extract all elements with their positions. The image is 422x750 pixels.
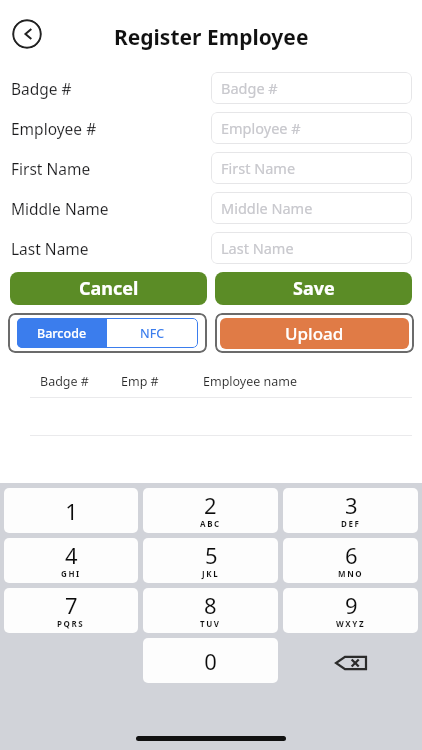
button[interactable]: Middle Name: [211, 192, 412, 224]
staticText: Employee #: [11, 118, 211, 139]
button[interactable]: Employee #: [211, 112, 412, 144]
button[interactable]: 5: [143, 538, 278, 583]
staticText: 2: [204, 490, 217, 520]
staticText: Upload: [285, 322, 344, 345]
button[interactable]: Save: [215, 272, 412, 305]
button[interactable]: Barcode: [17, 318, 107, 348]
staticText: 3: [345, 490, 358, 520]
staticText: Employee #: [221, 118, 301, 138]
staticText: Barcode: [37, 325, 87, 342]
staticText: Register Employee: [114, 23, 309, 52]
staticText: Employee name: [203, 373, 298, 390]
staticText: WXYZ: [336, 618, 366, 629]
button[interactable]: 9: [283, 588, 418, 633]
staticText: Last Name: [11, 238, 211, 259]
staticText: 6: [345, 540, 358, 570]
staticText: Middle Name: [11, 198, 211, 219]
staticText: 7: [65, 590, 78, 620]
button[interactable]: 0: [143, 638, 278, 683]
staticText: 5: [205, 540, 218, 570]
staticText: DEF: [341, 518, 361, 529]
staticText: NFC: [140, 325, 165, 342]
button[interactable]: 3: [283, 488, 418, 533]
button[interactable]: 1: [4, 488, 138, 533]
staticText: Emp #: [121, 373, 159, 390]
staticText: TUV: [200, 618, 221, 629]
staticText: Badge #: [11, 78, 211, 99]
staticText: Badge #: [40, 373, 89, 390]
button[interactable]: First Name: [211, 152, 412, 184]
staticText: Save: [293, 276, 335, 301]
button[interactable]: 7: [4, 588, 138, 633]
staticText: 0: [204, 646, 217, 676]
staticText: 4: [65, 540, 78, 570]
button[interactable]: Back: [12, 19, 42, 49]
button[interactable]: 8: [143, 588, 278, 633]
staticText: ABC: [200, 518, 221, 529]
staticText: Middle Name: [221, 198, 313, 218]
button[interactable]: 2: [143, 488, 278, 533]
staticText: PQRS: [57, 618, 85, 629]
button[interactable]: 4: [4, 538, 138, 583]
staticText: First Name: [11, 158, 211, 179]
staticText: Last Name: [221, 238, 294, 258]
button[interactable]: NFC: [107, 318, 198, 348]
staticText: JKL: [202, 568, 220, 579]
button[interactable]: Badge #: [211, 72, 412, 104]
button[interactable]: Cancel: [10, 272, 207, 305]
staticText: 1: [65, 496, 78, 526]
staticText: 9: [345, 590, 358, 620]
button[interactable]: Upload: [220, 318, 409, 349]
button[interactable]: Last Name: [211, 232, 412, 264]
staticText: Badge #: [221, 78, 278, 98]
staticText: First Name: [221, 158, 296, 178]
button[interactable]: Backspace: [283, 638, 418, 688]
staticText: GHI: [61, 568, 81, 579]
staticText: 8: [204, 590, 217, 620]
button[interactable]: 6: [283, 538, 418, 583]
staticText: Cancel: [79, 276, 139, 301]
staticText: MNO: [338, 568, 364, 579]
